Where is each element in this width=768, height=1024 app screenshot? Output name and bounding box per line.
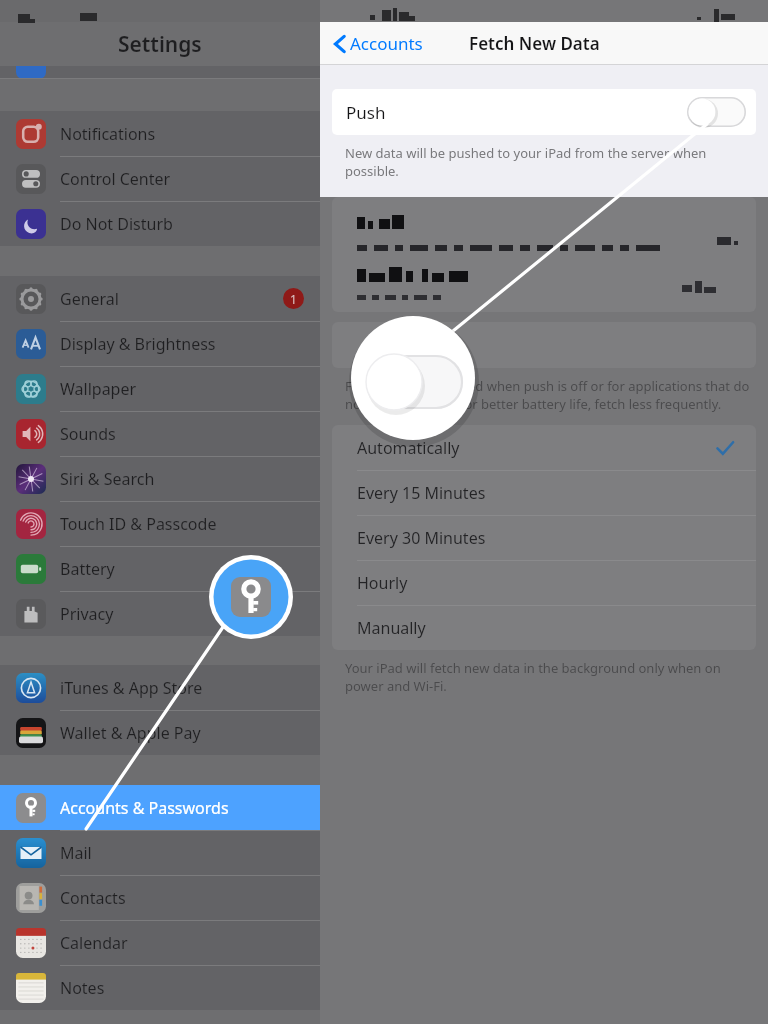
staticText: Control Center	[60, 168, 171, 190]
button[interactable]: iTunes & App Store	[0, 665, 320, 710]
button[interactable]: Every 30 Minutes	[332, 515, 756, 560]
button[interactable]: Sounds	[0, 411, 320, 456]
button[interactable]: Battery	[0, 546, 320, 591]
staticText: Mail	[60, 842, 92, 864]
button[interactable]: Manually	[332, 605, 756, 650]
staticText: Hourly	[357, 572, 408, 594]
staticText: Accounts	[350, 32, 423, 55]
button[interactable]: General	[0, 276, 320, 321]
button[interactable]	[332, 197, 756, 312]
button[interactable]: Hourly	[332, 560, 756, 605]
button[interactable]: Push	[332, 89, 756, 135]
button[interactable]: Privacy	[0, 591, 320, 636]
button[interactable]: Wallet & Apple Pay	[0, 710, 320, 755]
staticText: Push	[346, 101, 386, 124]
staticText: Wallpaper	[60, 378, 137, 400]
staticText: Privacy	[60, 603, 114, 625]
staticText: Notifications	[60, 123, 156, 145]
staticText: Settings	[118, 30, 202, 59]
staticText: General	[60, 288, 119, 310]
button[interactable]: Notes	[0, 965, 320, 1010]
staticText: 1	[290, 291, 297, 307]
button[interactable]: Every 15 Minutes	[332, 470, 756, 515]
button[interactable]: Calendar	[0, 920, 320, 965]
staticText: Every 15 Minutes	[357, 482, 486, 504]
staticText: Contacts	[60, 887, 126, 909]
staticText: Do Not Disturb	[60, 213, 173, 235]
staticText: iTunes & App Store	[60, 677, 203, 699]
button[interactable]: Automatically	[332, 425, 756, 470]
staticText: Manually	[357, 617, 426, 639]
button[interactable]: Notifications	[0, 111, 320, 156]
button[interactable]: Contacts	[0, 875, 320, 920]
staticText: Calendar	[60, 932, 128, 954]
staticText: Battery	[60, 558, 115, 580]
button[interactable]: Accounts & Passwords	[0, 785, 320, 830]
staticText: Accounts & Passwords	[60, 797, 229, 819]
staticText: Wallet & Apple Pay	[60, 722, 201, 744]
staticText: Your iPad will fetch new data in the bac…	[345, 659, 750, 695]
staticText: Notes	[60, 977, 105, 999]
button[interactable]: Touch ID & Passcode	[0, 501, 320, 546]
button[interactable]: Wallpaper	[0, 366, 320, 411]
staticText: Fetch new data is used when push is off …	[345, 377, 750, 413]
button[interactable]: Siri & Search	[0, 456, 320, 501]
button[interactable]: Control Center	[0, 156, 320, 201]
staticText: Fetch New Data	[469, 32, 600, 55]
staticText: Automatically	[357, 437, 460, 459]
button[interactable]: Accounts	[320, 26, 433, 61]
button[interactable]: Display & Brightness	[0, 321, 320, 366]
staticText: Sounds	[60, 423, 116, 445]
staticText: New data will be pushed to your iPad fro…	[345, 144, 752, 180]
staticText: Touch ID & Passcode	[60, 513, 217, 535]
button[interactable]: Push toggle	[687, 97, 746, 127]
staticText: Every 30 Minutes	[357, 527, 486, 549]
button[interactable]: Mail	[0, 830, 320, 875]
staticText: Display & Brightness	[60, 333, 216, 355]
button[interactable]	[332, 322, 756, 368]
staticText: Siri & Search	[60, 468, 155, 490]
button[interactable]: Do Not Disturb	[0, 201, 320, 246]
